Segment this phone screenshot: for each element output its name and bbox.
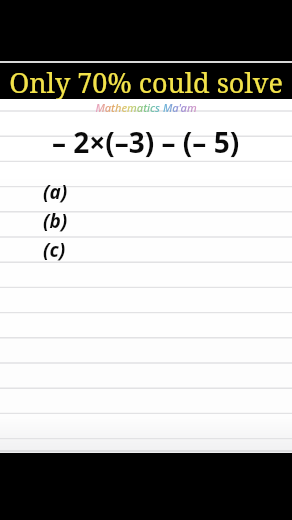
button[interactable]: (a) bbox=[0, 179, 292, 204]
button[interactable]: (b) bbox=[0, 208, 292, 233]
staticText: Only 70% could solve it bbox=[0, 64, 292, 100]
staticText: (c) bbox=[43, 237, 66, 262]
staticText: (a) bbox=[43, 179, 68, 204]
staticText: – 2×(–3) – (– 5) bbox=[52, 123, 240, 161]
staticText: Mathematics Ma'am bbox=[95, 100, 197, 115]
button[interactable]: (c) bbox=[0, 237, 292, 262]
button[interactable]: Only 70% could solve it bbox=[0, 63, 292, 99]
staticText: (b) bbox=[43, 208, 68, 233]
